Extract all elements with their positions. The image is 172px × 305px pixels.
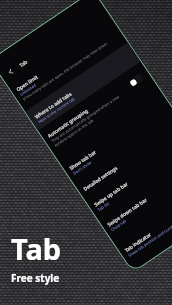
staticText: Open limit: [15, 73, 39, 93]
staticText: Don't show: [72, 159, 92, 176]
staticText: Next to the current tab: [37, 96, 76, 124]
button[interactable]: [127, 73, 145, 88]
staticText: Show tab position and number: [127, 221, 172, 258]
staticText: They are automatically grouped when a ne…: [50, 87, 133, 148]
button[interactable]: Tab: [0, 2, 109, 83]
staticText: Free style: [11, 271, 60, 285]
button[interactable]: Where to add tabs: [27, 45, 141, 131]
staticText: Tab indicator: [123, 231, 153, 253]
staticText: Show tab bar: [68, 149, 97, 171]
staticText: Detailed settings: [82, 164, 119, 192]
staticText: Unlimited: [19, 82, 37, 97]
staticText: Tab: [18, 58, 29, 68]
staticText: Automatic grouping: [46, 107, 89, 139]
staticText: Tab: [11, 229, 62, 268]
staticText: Close tab: [110, 218, 127, 232]
staticText: Where to add tabs: [33, 90, 73, 120]
staticText: Tab list: [96, 200, 110, 212]
staticText: Swipe up tab bar: [93, 180, 129, 208]
button[interactable]: Detailed settings: [75, 117, 172, 198]
staticText: Swipe down tab bar: [106, 196, 148, 228]
button[interactable]: Swipe up tab bar: [86, 133, 172, 219]
button[interactable]: Automatic grouping: [40, 64, 157, 154]
button[interactable]: Open limit: [8, 17, 125, 108]
button[interactable]: Swipe down tab bar: [99, 153, 172, 238]
button[interactable]: Show tab bar: [61, 96, 172, 182]
staticText: If too many tabs are open, the browser m…: [22, 40, 109, 101]
button[interactable]: [25, 42, 141, 131]
button[interactable]: Tab indicator: [117, 178, 172, 264]
